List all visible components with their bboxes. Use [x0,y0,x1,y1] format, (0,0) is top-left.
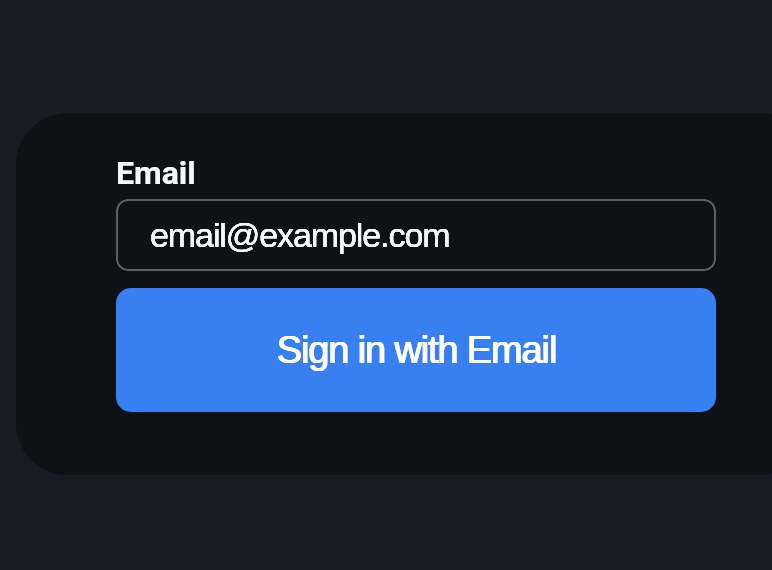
button[interactable]: Email address input field [116,199,716,271]
staticText: Sign in with Email [276,329,556,371]
staticText: email@example.com [150,216,450,254]
staticText: Sign in with Email [277,329,557,371]
button[interactable]: Sign in with Email [116,288,716,412]
staticText: email@example.com [150,216,450,254]
staticText: Email [116,154,196,192]
